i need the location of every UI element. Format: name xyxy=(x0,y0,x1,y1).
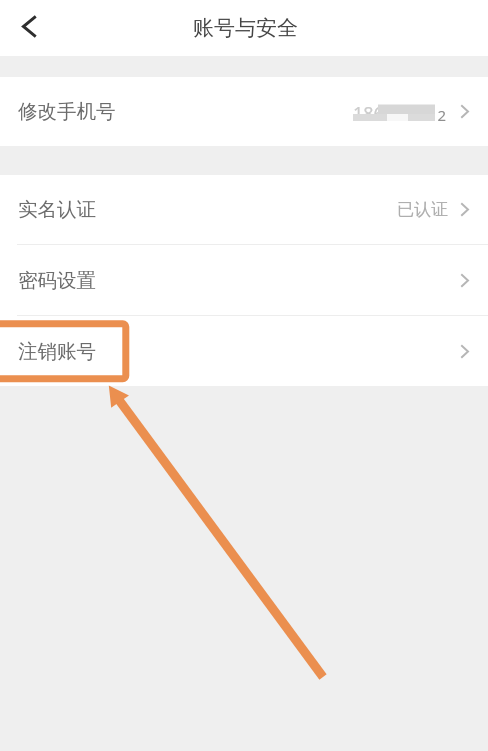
button[interactable]: 实名认证 xyxy=(0,175,488,244)
button[interactable]: 密码设置 xyxy=(0,245,488,315)
button[interactable]: Back xyxy=(5,2,53,50)
staticText: 实名认证 xyxy=(18,197,96,222)
staticText: 修改手机号 xyxy=(18,99,116,124)
button[interactable]: 注销账号 xyxy=(0,316,488,386)
staticText: 已认证 xyxy=(397,199,448,220)
staticText: 账号与安全 xyxy=(193,15,298,41)
staticText: 186 xyxy=(353,101,384,126)
staticText: 12 xyxy=(429,105,447,125)
button[interactable]: 修改手机号 xyxy=(0,77,488,146)
staticText: 密码设置 xyxy=(18,268,96,293)
staticText: 注销账号 xyxy=(18,339,96,364)
